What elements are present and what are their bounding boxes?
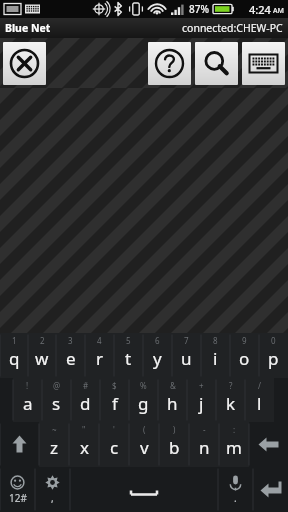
button[interactable]: Search bbox=[195, 42, 238, 85]
button[interactable]: Space bbox=[70, 467, 218, 512]
staticText: o bbox=[239, 347, 250, 370]
button[interactable]: Settings bbox=[35, 467, 70, 512]
staticText: f bbox=[112, 392, 118, 415]
staticText: ) bbox=[173, 424, 176, 435]
staticText: AM bbox=[273, 6, 285, 16]
button[interactable]: # bbox=[71, 378, 100, 422]
button[interactable]: Shift bbox=[0, 422, 39, 467]
staticText: 6 bbox=[155, 335, 160, 346]
staticText: 4:24 bbox=[249, 2, 271, 17]
staticText: ! bbox=[26, 380, 29, 391]
staticText: @ bbox=[53, 380, 61, 391]
staticText: s bbox=[52, 392, 61, 415]
staticText: 12# bbox=[9, 491, 27, 505]
staticText: 4 bbox=[97, 335, 102, 346]
staticText: i bbox=[213, 347, 218, 370]
button[interactable]: Keyboard bbox=[242, 42, 285, 85]
staticText: % bbox=[140, 380, 147, 391]
staticText: ? bbox=[229, 380, 233, 391]
button[interactable]: Help bbox=[148, 42, 191, 85]
staticText: h bbox=[167, 392, 178, 415]
button[interactable]: @ bbox=[42, 378, 71, 422]
button[interactable]: $ bbox=[100, 378, 129, 422]
button[interactable]: 1 bbox=[0, 333, 28, 378]
staticText: 5 bbox=[126, 335, 131, 346]
button[interactable]: Voice input bbox=[218, 467, 253, 512]
staticText: - bbox=[203, 424, 206, 435]
staticText: a bbox=[23, 392, 33, 415]
button[interactable]: Close bbox=[3, 42, 46, 85]
button[interactable]: / bbox=[245, 378, 274, 422]
staticText: l bbox=[257, 392, 262, 415]
staticText: g bbox=[138, 392, 149, 415]
button[interactable]: + bbox=[187, 378, 216, 422]
staticText: u bbox=[181, 347, 192, 370]
staticText: ' bbox=[113, 424, 115, 435]
staticText: v bbox=[140, 436, 149, 459]
staticText: 87% bbox=[189, 2, 209, 16]
button[interactable]: Backspace bbox=[249, 422, 288, 467]
button[interactable]: ) bbox=[159, 422, 189, 467]
staticText: p bbox=[268, 347, 279, 370]
staticText: : bbox=[233, 424, 236, 435]
staticText: 8 bbox=[213, 335, 218, 346]
button[interactable]: 2 bbox=[28, 333, 56, 378]
staticText: m bbox=[226, 436, 242, 459]
button[interactable]: Enter bbox=[253, 467, 288, 512]
staticText: c bbox=[110, 436, 119, 459]
staticText: 1 bbox=[12, 335, 17, 346]
button[interactable]: 3 bbox=[56, 333, 85, 378]
staticText: 2 bbox=[40, 335, 45, 346]
staticText: + bbox=[199, 380, 204, 391]
staticText: connected:CHEW-PC bbox=[182, 21, 283, 35]
staticText: w bbox=[35, 347, 49, 370]
staticText: ( bbox=[143, 424, 146, 435]
button[interactable]: " bbox=[69, 422, 99, 467]
staticText: , bbox=[51, 491, 54, 505]
staticText: r bbox=[96, 347, 104, 370]
staticText: 7 bbox=[184, 335, 189, 346]
staticText: t bbox=[125, 347, 132, 370]
staticText: q bbox=[9, 347, 20, 370]
staticText: b bbox=[169, 436, 180, 459]
button[interactable]: ( bbox=[129, 422, 159, 467]
button[interactable]: ! bbox=[13, 378, 42, 422]
staticText: n bbox=[199, 436, 210, 459]
button[interactable]: - bbox=[189, 422, 219, 467]
button[interactable]: : bbox=[219, 422, 249, 467]
button[interactable]: 5 bbox=[114, 333, 143, 378]
staticText: Blue Net bbox=[5, 21, 51, 35]
button[interactable]: 6 bbox=[143, 333, 172, 378]
staticText: ~ bbox=[52, 424, 57, 435]
button[interactable]: ? bbox=[216, 378, 245, 422]
staticText: k bbox=[226, 392, 236, 415]
staticText: x bbox=[80, 436, 89, 459]
button[interactable]: 9 bbox=[230, 333, 259, 378]
staticText: 0 bbox=[271, 335, 276, 346]
staticText: 3 bbox=[68, 335, 73, 346]
staticText: . bbox=[234, 491, 237, 505]
staticText: y bbox=[153, 347, 162, 370]
button[interactable]: ' bbox=[99, 422, 129, 467]
staticText: / bbox=[258, 380, 261, 391]
staticText: & bbox=[170, 380, 176, 391]
staticText: e bbox=[66, 347, 76, 370]
button[interactable]: 0 bbox=[259, 333, 288, 378]
staticText: # bbox=[83, 380, 89, 391]
button[interactable]: & bbox=[158, 378, 187, 422]
button[interactable]: 7 bbox=[172, 333, 201, 378]
staticText: " bbox=[82, 424, 86, 435]
button[interactable]: 4 bbox=[85, 333, 114, 378]
button[interactable]: Symbols bbox=[0, 467, 35, 512]
staticText: 9 bbox=[242, 335, 247, 346]
button[interactable]: ~ bbox=[39, 422, 69, 467]
button[interactable]: 8 bbox=[201, 333, 230, 378]
staticText: z bbox=[50, 436, 58, 459]
staticText: $ bbox=[112, 380, 117, 391]
staticText: j bbox=[199, 392, 204, 415]
staticText: d bbox=[80, 392, 91, 415]
button[interactable]: % bbox=[129, 378, 158, 422]
